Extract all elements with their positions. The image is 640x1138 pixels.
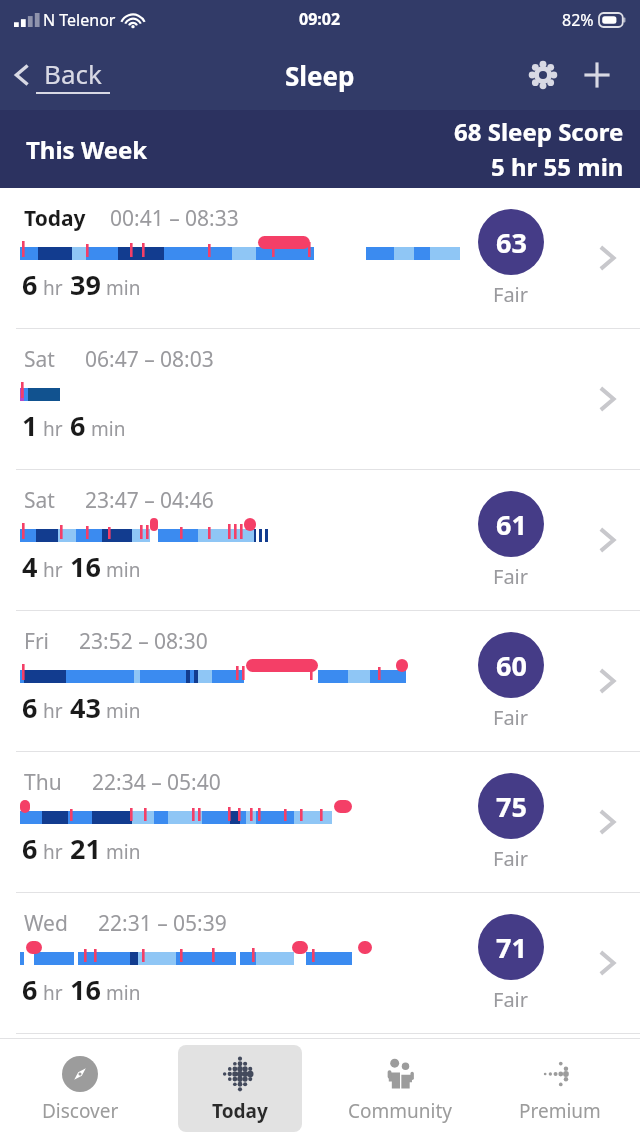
staticText: 75 — [496, 788, 527, 825]
staticText: hr — [43, 275, 63, 301]
button[interactable]: Sat — [0, 329, 640, 469]
staticText: Community — [348, 1098, 452, 1124]
staticText: 68 Sleep Score — [454, 115, 624, 148]
staticText: Fair — [493, 986, 529, 1013]
staticText: Fair — [493, 704, 529, 731]
staticText: Fair — [493, 563, 529, 590]
button[interactable]: Back — [0, 56, 120, 94]
button[interactable]: Premium — [498, 1045, 622, 1132]
staticText: 4 — [22, 548, 38, 585]
staticText: 63 — [496, 224, 527, 261]
staticText: Discover — [42, 1098, 119, 1124]
button[interactable]: Add — [570, 48, 624, 102]
button[interactable]: Today — [178, 1045, 302, 1132]
staticText: hr — [43, 557, 63, 583]
staticText: 39 — [70, 266, 101, 303]
staticText: 16 — [70, 971, 101, 1008]
staticText: 82% — [562, 9, 594, 31]
staticText: min — [106, 980, 141, 1006]
staticText: Today — [24, 204, 86, 233]
staticText: N Telenor — [43, 9, 116, 31]
staticText: min — [106, 839, 141, 865]
staticText: 16 — [70, 548, 101, 585]
staticText: 60 — [496, 647, 527, 684]
staticText: min — [106, 275, 141, 301]
staticText: Fair — [493, 281, 529, 308]
staticText: 09:02 — [299, 8, 341, 30]
staticText: 61 — [496, 506, 527, 543]
staticText: 6 — [22, 266, 38, 303]
button[interactable]: Thu — [0, 752, 640, 892]
staticText: Back — [44, 56, 102, 91]
button[interactable]: Community — [338, 1045, 462, 1132]
staticText: hr — [43, 839, 63, 865]
staticText: hr — [43, 980, 63, 1006]
staticText: 06:47 – 08:03 — [85, 345, 214, 374]
staticText: 00:41 – 08:33 — [110, 204, 239, 233]
staticText: Sat — [24, 345, 55, 374]
staticText: 43 — [70, 689, 101, 726]
staticText: 6 — [22, 689, 38, 726]
staticText: Fair — [493, 845, 529, 872]
staticText: hr — [43, 416, 63, 442]
staticText: Sleep — [285, 58, 355, 93]
staticText: 23:47 – 04:46 — [85, 486, 214, 515]
staticText: Wed — [24, 909, 68, 938]
staticText: min — [91, 416, 126, 442]
staticText: 1 — [22, 407, 38, 444]
staticText: min — [106, 698, 141, 724]
staticText: This Week — [26, 133, 148, 166]
staticText: 23:52 – 08:30 — [79, 627, 208, 656]
staticText: Thu — [24, 768, 62, 797]
staticText: 5 hr 55 min — [491, 150, 624, 183]
staticText: min — [106, 557, 141, 583]
button[interactable]: Settings — [516, 48, 570, 102]
staticText: 71 — [496, 929, 527, 966]
button[interactable]: Wed — [0, 893, 640, 1033]
staticText: 22:34 – 05:40 — [92, 768, 221, 797]
staticText: Fri — [24, 627, 49, 656]
button[interactable]: Discover — [18, 1045, 142, 1132]
staticText: 21 — [70, 830, 101, 867]
staticText: 6 — [22, 830, 38, 867]
staticText: 6 — [70, 407, 86, 444]
button[interactable]: This Week — [0, 110, 640, 188]
staticText: 22:31 – 05:39 — [98, 909, 227, 938]
staticText: hr — [43, 698, 63, 724]
staticText: 6 — [22, 971, 38, 1008]
staticText: Sat — [24, 486, 55, 515]
staticText: Today — [212, 1098, 268, 1124]
button[interactable]: Fri — [0, 611, 640, 751]
staticText: Premium — [519, 1098, 601, 1124]
button[interactable]: Sat — [0, 470, 640, 610]
button[interactable]: Today — [0, 188, 640, 328]
